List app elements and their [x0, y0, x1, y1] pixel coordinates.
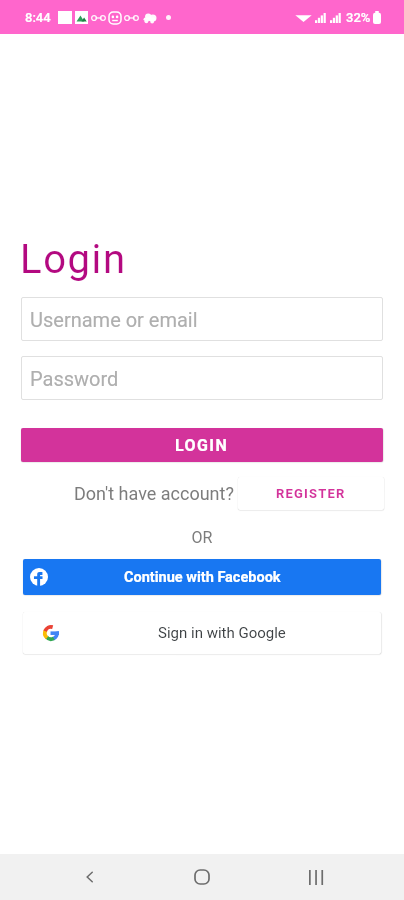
other: Facebook	[30, 568, 48, 586]
button[interactable]: Sign in with Google	[23, 612, 381, 654]
button[interactable]: Recent apps	[292, 854, 338, 900]
button[interactable]: Continue with Facebook	[23, 559, 381, 595]
button[interactable]: REGISTER	[238, 477, 384, 510]
staticText: Continue with Facebook	[124, 569, 281, 586]
button[interactable]: Back	[67, 854, 113, 900]
staticText: REGISTER	[276, 486, 346, 501]
staticText: 8:44	[25, 10, 51, 25]
staticText: OR	[0, 528, 404, 547]
staticText: LOGIN	[175, 436, 229, 455]
staticText: Don't have account?	[74, 483, 234, 504]
button[interactable]: Home	[179, 854, 225, 900]
other: Google	[43, 625, 59, 641]
staticText: Sign in with Google	[158, 624, 286, 642]
button[interactable]: Password	[21, 356, 383, 400]
staticText: Login	[20, 236, 127, 283]
staticText: Password	[30, 367, 119, 390]
staticText: Username or email	[30, 308, 198, 331]
button[interactable]: LOGIN	[21, 428, 383, 462]
staticText: 32%	[346, 10, 371, 25]
button[interactable]: Username or email	[21, 297, 383, 341]
